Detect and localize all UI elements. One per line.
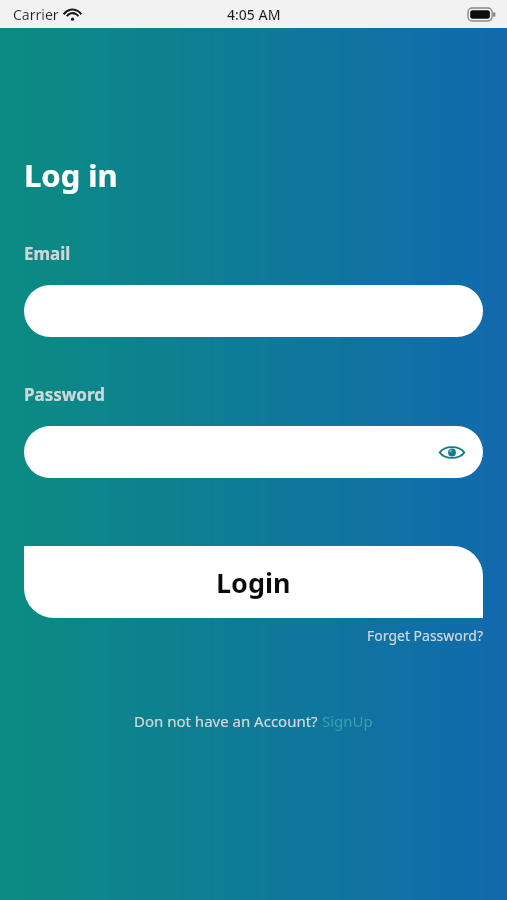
staticText: Don not have an Account?: [134, 711, 322, 731]
staticText: Password: [24, 383, 105, 406]
staticText: Email: [24, 242, 71, 265]
staticText: Forget Password?: [367, 626, 483, 645]
button[interactable]: [24, 285, 483, 337]
button[interactable]: Forget Password?: [367, 626, 483, 645]
staticText: Log in: [24, 154, 118, 196]
staticText: 4:05 AM: [227, 5, 281, 24]
button[interactable]: Show password: [437, 437, 467, 467]
staticText: Carrier: [13, 5, 59, 24]
staticText: SignUp: [322, 711, 373, 731]
button[interactable]: Show password: [24, 426, 483, 478]
staticText: Login: [216, 564, 291, 601]
button[interactable]: Login: [24, 546, 483, 618]
button[interactable]: SignUp: [322, 711, 373, 731]
